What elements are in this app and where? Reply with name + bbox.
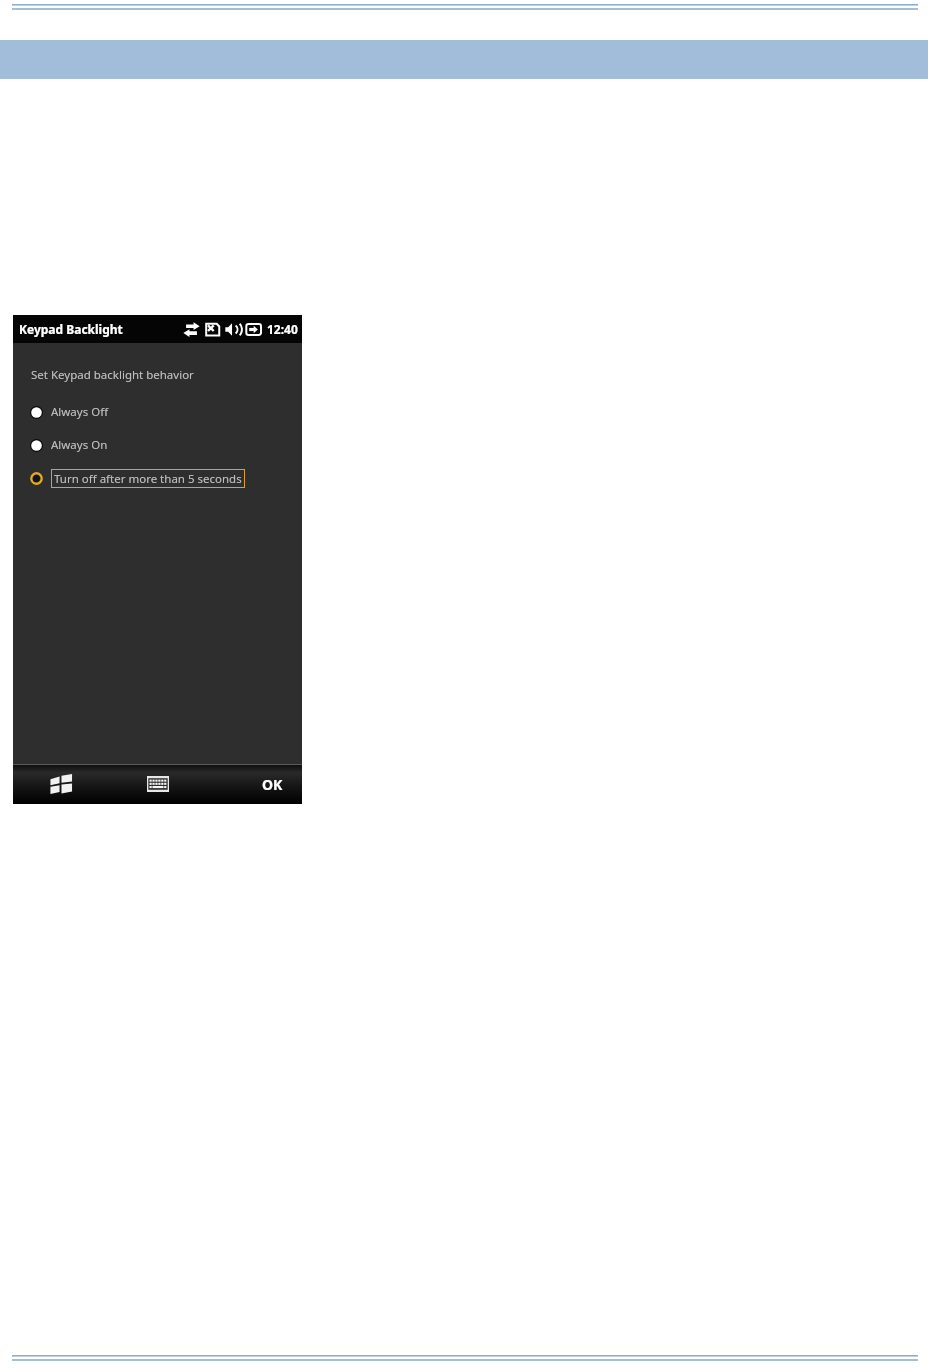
other: Volume [225, 322, 241, 337]
staticText: Keypad Backlight [19, 321, 123, 337]
staticText: 12:40 [267, 321, 298, 337]
button[interactable]: Always On [13, 434, 302, 456]
other: No signal [205, 322, 220, 337]
button[interactable]: Keyboard [121, 764, 195, 804]
staticText: OK [262, 775, 283, 794]
other: Data connection [183, 322, 200, 337]
staticText: Set Keypad backlight behavior [31, 367, 194, 383]
staticText: Turn off after more than 5 seconds [54, 471, 242, 487]
other: Battery charging [246, 323, 262, 336]
button[interactable]: Turn off after more than 5 seconds [13, 467, 302, 489]
button[interactable]: Start [13, 764, 109, 804]
button[interactable]: OK [216, 764, 302, 804]
staticText: Always On [51, 437, 108, 453]
staticText: Always Off [51, 404, 109, 420]
button[interactable]: Always Off [13, 401, 302, 423]
